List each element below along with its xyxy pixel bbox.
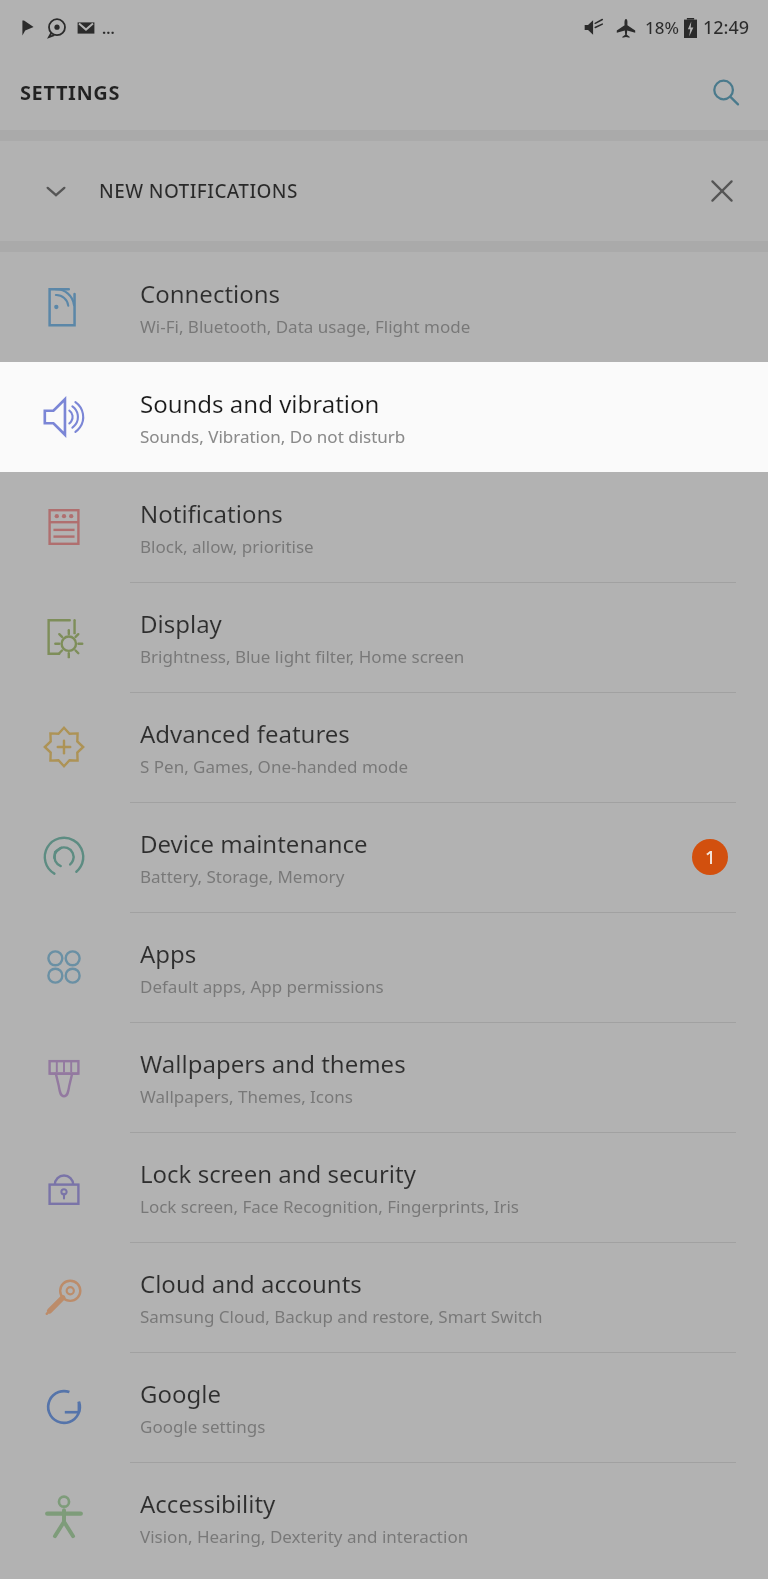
button[interactable]: Close [694,163,750,219]
staticText: Notifications [140,497,283,530]
staticText: Sounds, Vibration, Do not disturb [140,425,406,448]
staticText: Wallpapers and themes [140,1047,406,1080]
button[interactable]: Search [698,65,754,121]
staticText: Accessibility [140,1487,276,1520]
staticText: NEW NOTIFICATIONS [99,178,298,204]
staticText: Block, allow, prioritise [140,535,314,558]
staticText: S Pen, Games, One-handed mode [140,755,409,778]
staticText: Google [140,1377,221,1410]
staticText: SETTINGS [20,79,121,106]
button[interactable]: Sounds and vibration [0,362,768,472]
staticText: 1 [705,845,716,870]
staticText: Lock screen and security [140,1157,416,1190]
button[interactable]: Device maintenance [0,802,768,912]
staticText: Brightness, Blue light filter, Home scre… [140,645,465,668]
staticText: Advanced features [140,717,350,750]
staticText: Default apps, App permissions [140,975,384,998]
button[interactable]: Accessibility [0,1462,768,1572]
staticText: Apps [140,937,197,970]
staticText: Wi-Fi, Bluetooth, Data usage, Flight mod… [140,315,471,338]
button[interactable]: Display [0,582,768,692]
staticText: Vision, Hearing, Dexterity and interacti… [140,1525,469,1548]
staticText: Battery, Storage, Memory [140,865,345,888]
button[interactable]: Connections [0,252,768,362]
button[interactable]: Expand [0,141,768,241]
staticText: Display [140,607,222,640]
button[interactable]: Notifications [0,472,768,582]
staticText: ... [102,18,115,38]
staticText: 12:49 [703,15,750,40]
button[interactable]: Cloud and accounts [0,1242,768,1352]
staticText: Samsung Cloud, Backup and restore, Smart… [140,1305,543,1328]
other: Expand [36,171,76,211]
staticText: Device maintenance [140,827,368,860]
staticText: Wallpapers, Themes, Icons [140,1085,353,1108]
button[interactable]: Google [0,1352,768,1462]
staticText: Sounds and vibration [140,387,380,420]
staticText: Google settings [140,1415,266,1438]
button[interactable]: Apps [0,912,768,1022]
staticText: Connections [140,277,281,310]
button[interactable]: Wallpapers and themes [0,1022,768,1132]
staticText: Cloud and accounts [140,1267,362,1300]
button[interactable]: Lock screen and security [0,1132,768,1242]
staticText: Lock screen, Face Recognition, Fingerpri… [140,1195,519,1218]
staticText: 18% [645,16,679,39]
button[interactable]: Advanced features [0,692,768,802]
